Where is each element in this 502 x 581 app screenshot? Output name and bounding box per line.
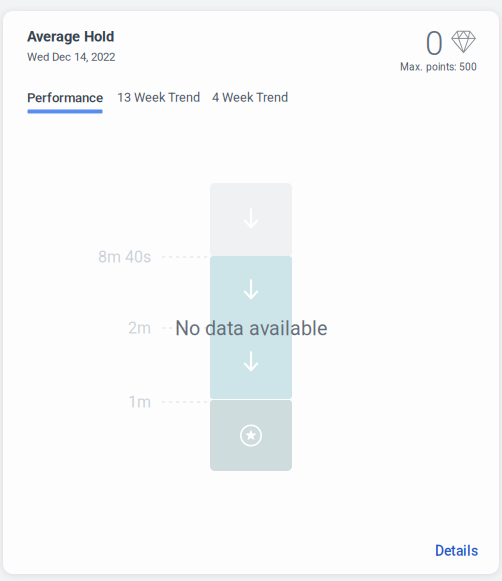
button[interactable]: 4 Week Trend xyxy=(200,90,288,105)
staticText: Performance xyxy=(27,90,103,105)
button[interactable]: 13 Week Trend xyxy=(104,90,200,105)
staticText: Wed Dec 14, 2022 xyxy=(27,50,115,63)
staticText: 4 Week Trend xyxy=(212,90,288,105)
staticText: No data available xyxy=(175,317,327,340)
staticText: Max. points: 500 xyxy=(400,61,477,73)
staticText: Details xyxy=(435,543,478,559)
button[interactable]: Performance xyxy=(26,90,104,113)
staticText: 8m 40s xyxy=(98,248,151,266)
button[interactable]: Details xyxy=(429,537,484,565)
staticText: Average Hold xyxy=(27,28,114,45)
staticText: 2m xyxy=(128,319,151,337)
staticText: 0 xyxy=(425,24,443,63)
staticText: 13 Week Trend xyxy=(117,90,200,105)
staticText: 1m xyxy=(128,393,151,411)
